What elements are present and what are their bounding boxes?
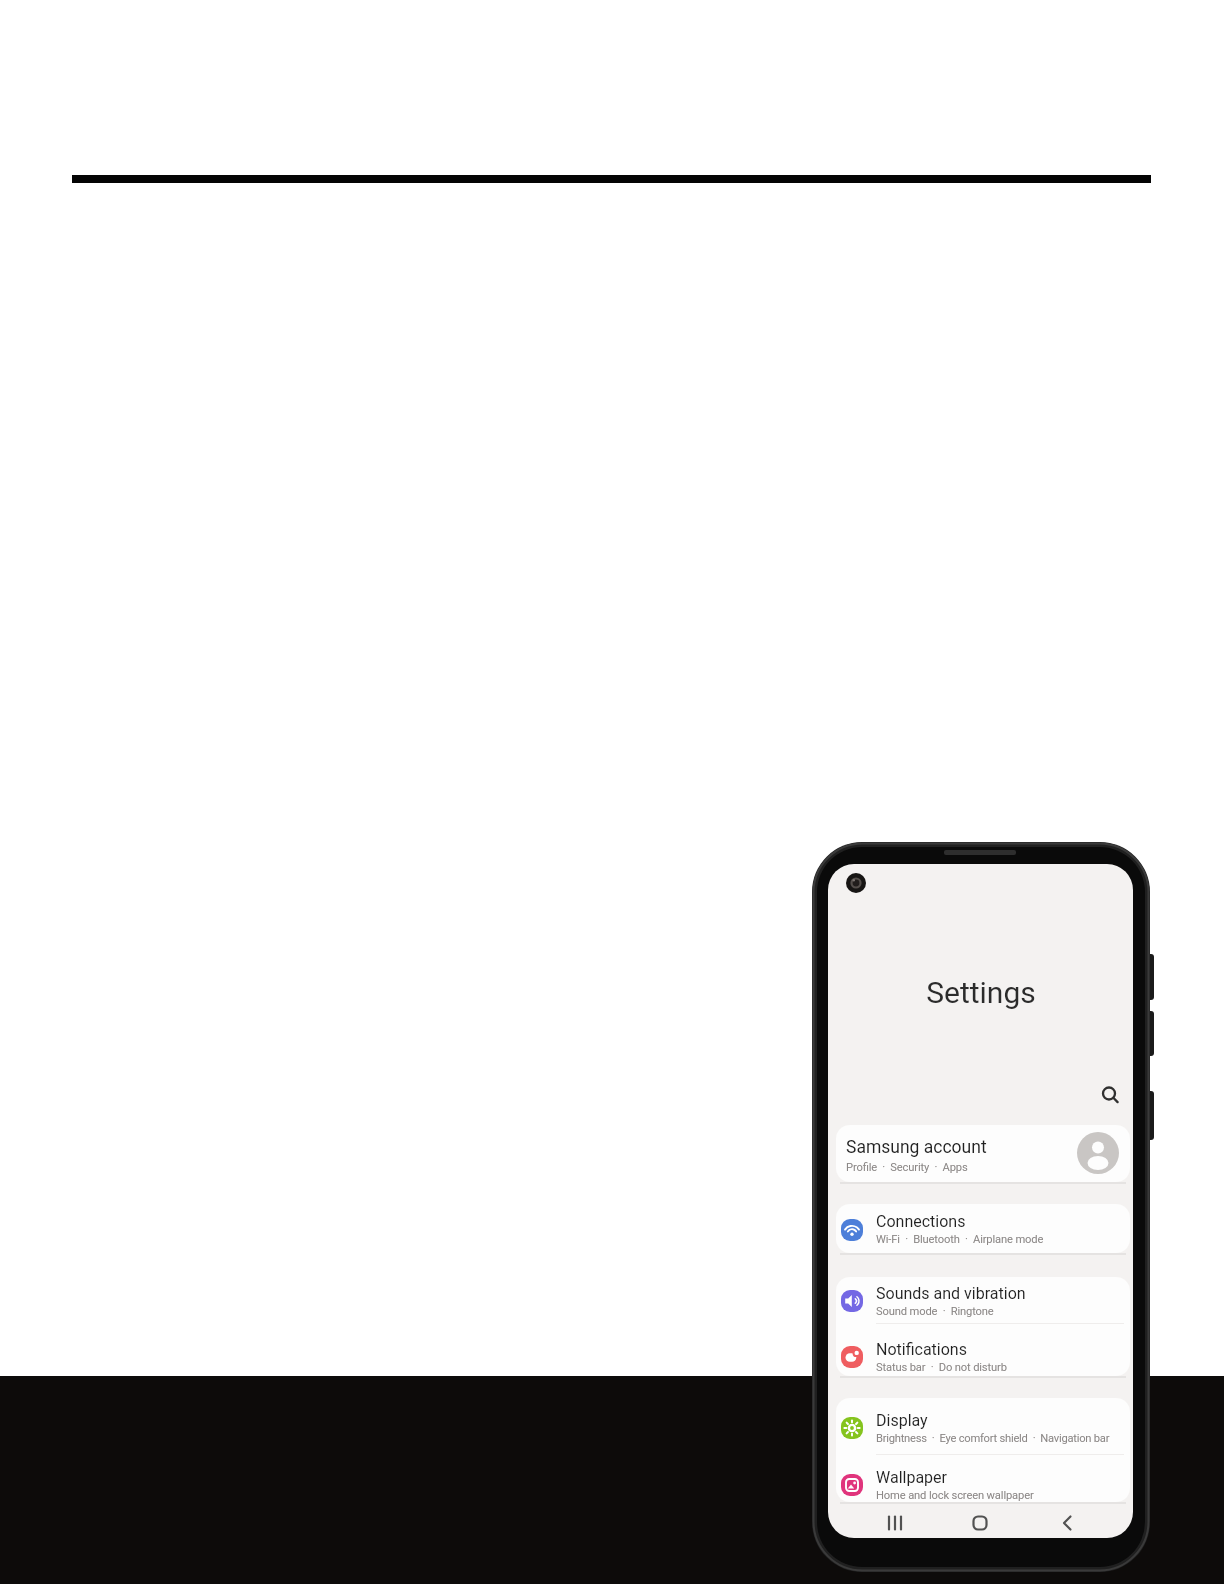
staticText: Display xyxy=(876,1411,928,1430)
button[interactable] xyxy=(836,1204,1130,1253)
button[interactable] xyxy=(836,1456,1130,1502)
staticText: Wi-Fi · Bluetooth · Airplane mode xyxy=(876,1233,1044,1246)
staticText: Sound mode · Ringtone xyxy=(876,1305,994,1318)
staticText: Wallpaper xyxy=(876,1468,947,1487)
staticText: Connections xyxy=(876,1212,966,1231)
staticText: Samsung account xyxy=(846,1137,987,1158)
staticText: Status bar · Do not disturb xyxy=(876,1361,1007,1374)
staticText: Profile · Security · Apps xyxy=(846,1161,968,1174)
button[interactable] xyxy=(836,1125,1130,1182)
staticText: Settings xyxy=(926,975,1036,1010)
staticText: Sounds and vibration xyxy=(876,1284,1026,1303)
staticText: Brightness · Eye comfort shield · Naviga… xyxy=(876,1432,1110,1445)
button[interactable] xyxy=(836,1325,1130,1376)
staticText: Home and lock screen wallpaper xyxy=(876,1489,1034,1502)
button[interactable] xyxy=(836,1277,1130,1324)
button[interactable] xyxy=(960,1503,1000,1543)
button[interactable] xyxy=(1047,1503,1087,1543)
button[interactable] xyxy=(836,1398,1130,1454)
button[interactable] xyxy=(1094,1079,1128,1113)
staticText: Notifications xyxy=(876,1340,967,1359)
button[interactable] xyxy=(875,1503,915,1543)
